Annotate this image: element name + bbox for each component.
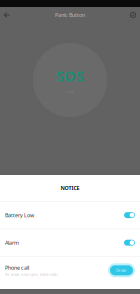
staticText: Battery Low [5, 212, 34, 219]
button[interactable]: SOS [33, 43, 107, 117]
button[interactable]: Alarm [0, 229, 140, 256]
button[interactable]: Help [127, 8, 139, 22]
button[interactable]: Back [1, 8, 13, 22]
staticText: Alarm [5, 239, 19, 246]
staticText: Order [116, 268, 127, 273]
staticText: Panic Button [55, 11, 85, 19]
button[interactable]: Battery Low [0, 202, 140, 229]
button[interactable]: Phone call [0, 257, 140, 284]
staticText: The service is not open, click to order [5, 273, 58, 276]
staticText: Phone call [5, 264, 29, 271]
staticText: NOTICE [60, 184, 79, 192]
staticText: PRESS [66, 90, 73, 94]
staticText: SOS [56, 66, 84, 85]
